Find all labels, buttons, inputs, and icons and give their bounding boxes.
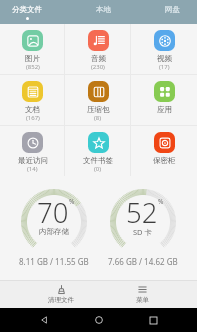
staticText: (230): [91, 63, 105, 71]
button[interactable]: Home: [88, 309, 110, 331]
staticText: 图片: [25, 54, 40, 63]
button[interactable]: 压缩包: [65, 75, 131, 125]
staticText: 本地: [96, 5, 111, 14]
staticText: 保密柜: [153, 156, 176, 165]
button[interactable]: 最近访问: [0, 126, 65, 176]
staticText: 70: [37, 194, 69, 231]
staticText: 内部存储: [39, 227, 69, 236]
staticText: 菜单: [136, 296, 149, 304]
button[interactable]: Back: [33, 309, 55, 331]
staticText: (14): [27, 165, 38, 173]
button[interactable]: Recents: [142, 309, 164, 331]
staticText: %: [69, 197, 75, 206]
staticText: (8): [94, 114, 102, 122]
staticText: 7.66 GB / 14.62 GB: [108, 256, 178, 267]
button[interactable]: 图片: [0, 24, 65, 74]
staticText: (167): [26, 114, 40, 122]
button[interactable]: 音频: [65, 24, 131, 74]
button[interactable]: 应用: [131, 75, 197, 125]
staticText: 音频: [91, 54, 106, 63]
staticText: 文档: [25, 105, 40, 114]
button[interactable]: 文件书签: [65, 126, 131, 176]
staticText: 8.11 GB / 11.55 GB: [19, 256, 89, 267]
staticText: 压缩包: [87, 105, 110, 114]
staticText: 应用: [157, 105, 172, 114]
staticText: 视频: [157, 54, 172, 63]
staticText: 文件书签: [83, 156, 113, 165]
staticText: 清理文件: [48, 296, 74, 304]
staticText: %: [158, 197, 164, 206]
button[interactable]: 保密柜: [131, 126, 197, 176]
button[interactable]: 文档: [0, 75, 65, 125]
button[interactable]: 网盘: [165, 0, 180, 24]
staticText: 最近访问: [18, 156, 48, 165]
button[interactable]: 清理文件: [34, 282, 88, 307]
staticText: 分类文件: [12, 5, 42, 14]
button[interactable]: 视频: [131, 24, 197, 74]
staticText: (17): [159, 63, 170, 71]
staticText: SD 卡: [133, 227, 153, 237]
staticText: (852): [26, 63, 40, 71]
button[interactable]: 菜单: [122, 282, 163, 307]
staticText: 网盘: [165, 5, 180, 14]
staticText: 52: [126, 194, 158, 231]
button[interactable]: 本地: [96, 0, 111, 24]
button[interactable]: 分类文件: [12, 0, 42, 24]
staticText: (0): [94, 165, 102, 173]
